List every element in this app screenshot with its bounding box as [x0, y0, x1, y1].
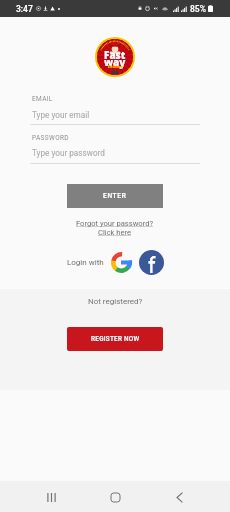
staticText: Login with [67, 258, 104, 267]
button[interactable]: Home [101, 483, 130, 512]
staticText: way [104, 55, 126, 69]
staticText: ENTER [103, 192, 127, 200]
button[interactable]: REGISTER NOW [67, 327, 163, 351]
staticText: 3:47 [16, 4, 33, 14]
staticText: Not registered? [88, 297, 143, 306]
staticText: Forgot your password? [76, 219, 154, 228]
button[interactable]: Login with Google [111, 250, 136, 275]
staticText: REGISTER NOW [91, 335, 140, 343]
button[interactable]: Back [165, 483, 194, 512]
staticText: Click here [98, 228, 132, 237]
staticText: PASSWORD [32, 134, 69, 142]
button[interactable]: Recent apps [37, 483, 66, 512]
button[interactable]: ENTER [67, 184, 163, 208]
staticText: EMAIL [32, 95, 53, 103]
staticText: 85% [190, 4, 206, 14]
button[interactable]: Login with Facebook [139, 250, 164, 275]
staticText: Type your password [32, 148, 105, 158]
staticText: Fast [104, 48, 126, 62]
button[interactable]: Forgot your password? [76, 219, 154, 237]
staticText: Delivery [108, 64, 123, 69]
staticText: Type your email [32, 110, 90, 120]
